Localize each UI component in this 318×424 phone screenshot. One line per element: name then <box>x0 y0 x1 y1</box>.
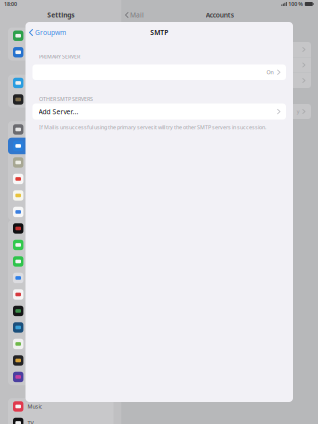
staticText: Passwords <box>27 126 54 133</box>
button[interactable]: Stocks <box>8 303 113 319</box>
button[interactable]: News <box>8 286 113 303</box>
staticText: Mail <box>130 11 144 19</box>
button[interactable]: Groupwm <box>25 25 70 40</box>
button[interactable]: Mail <box>8 138 113 154</box>
staticText: Settings <box>47 11 74 19</box>
staticText: Privacy & Security <box>27 49 71 56</box>
staticText: Add Server... <box>38 107 78 116</box>
button[interactable]: Safari <box>8 270 113 286</box>
button[interactable]: On <box>25 64 293 80</box>
button[interactable]: TV <box>8 415 113 424</box>
staticText: TV <box>27 419 33 424</box>
button[interactable]: Contacts <box>8 154 113 171</box>
staticText: App Store <box>27 79 50 86</box>
button[interactable]: Reminders <box>8 204 113 220</box>
staticText: Wallet <box>27 96 42 103</box>
button[interactable]: Phone <box>8 27 113 44</box>
button[interactable]: Books <box>8 352 113 369</box>
button[interactable]: Weather <box>8 319 113 336</box>
staticText: y <box>297 108 300 115</box>
button[interactable]: Calendar <box>8 171 113 187</box>
staticText: On <box>267 69 274 76</box>
button[interactable]: Mail <box>121 8 148 22</box>
button[interactable]: Clock <box>8 220 113 237</box>
staticText: PRIMARY SERVER <box>39 53 80 60</box>
staticText: SMTP <box>150 28 168 37</box>
staticText: Accounts <box>206 11 234 19</box>
staticText: 18:00 <box>4 0 17 8</box>
staticText: Groupwm <box>35 28 66 37</box>
button[interactable]: Music <box>8 398 113 415</box>
button[interactable]: Passwords <box>8 121 113 138</box>
staticText: OTHER SMTP SERVERS <box>39 95 93 103</box>
button[interactable]: Wallet <box>8 91 113 108</box>
staticText: If Mail is unsuccessful using the primar… <box>39 124 266 131</box>
staticText: 100 % <box>288 0 303 8</box>
button[interactable]: FaceTime <box>8 253 113 270</box>
staticText: Phone <box>27 32 42 39</box>
button[interactable]: App Store <box>8 75 113 91</box>
button[interactable]: Podcasts <box>8 369 113 385</box>
button[interactable]: Photos <box>8 336 113 352</box>
staticText: Music <box>27 403 42 410</box>
button[interactable]: Messages <box>8 237 113 253</box>
button[interactable]: Add Server... <box>25 104 293 120</box>
button[interactable]: Privacy & Security <box>8 44 113 60</box>
button[interactable]: Notes <box>8 187 113 204</box>
